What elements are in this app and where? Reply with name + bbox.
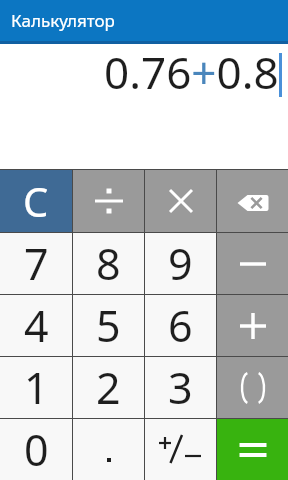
- button[interactable]: [73, 170, 144, 232]
- button[interactable]: 6: [145, 295, 216, 356]
- button[interactable]: 8: [73, 233, 144, 294]
- button[interactable]: 9: [145, 233, 216, 294]
- staticText: 9: [168, 234, 193, 293]
- button[interactable]: [217, 295, 288, 356]
- staticText: 8: [96, 234, 121, 293]
- staticText: 1: [24, 358, 49, 417]
- button[interactable]: [73, 419, 144, 480]
- button[interactable]: [217, 170, 288, 232]
- button[interactable]: 0: [0, 419, 72, 480]
- staticText: 5: [96, 296, 121, 355]
- button[interactable]: Калькулятор: [0, 0, 288, 41]
- button[interactable]: 5: [73, 295, 144, 356]
- button[interactable]: [145, 170, 216, 232]
- button[interactable]: [217, 419, 288, 480]
- staticText: 2: [96, 358, 121, 417]
- button[interactable]: [217, 233, 288, 294]
- button[interactable]: 1: [0, 357, 72, 418]
- button[interactable]: 4: [0, 295, 72, 356]
- staticText: 3: [168, 358, 193, 417]
- button[interactable]: C: [0, 170, 72, 232]
- button[interactable]: 7: [0, 233, 72, 294]
- button[interactable]: 3: [145, 357, 216, 418]
- staticText: 6: [168, 296, 193, 355]
- staticText: 0: [24, 420, 49, 479]
- staticText: Калькулятор: [11, 9, 115, 32]
- button[interactable]: [145, 419, 216, 480]
- staticText: 7: [24, 234, 49, 293]
- button[interactable]: 2: [73, 357, 144, 418]
- button[interactable]: [217, 357, 288, 418]
- staticText: C: [23, 174, 49, 228]
- staticText: 0.76+0.8: [104, 42, 279, 102]
- staticText: 4: [24, 296, 49, 355]
